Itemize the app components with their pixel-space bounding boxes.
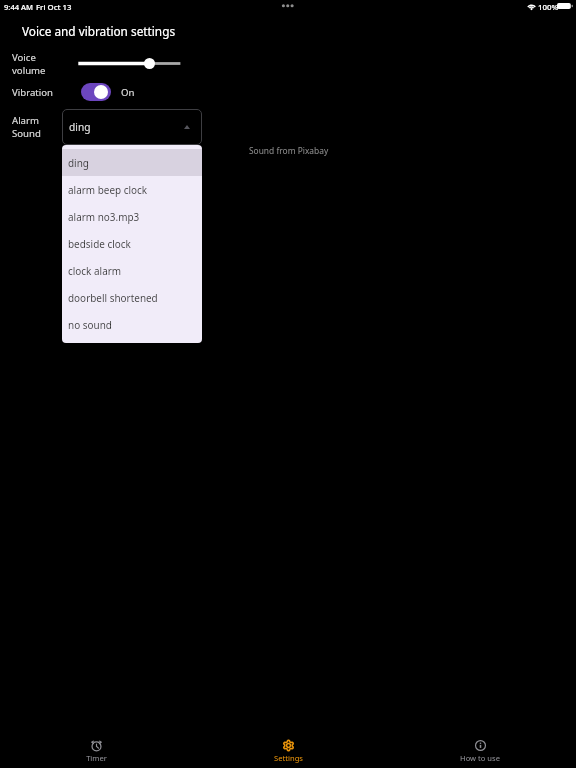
button[interactable]: alarm no3.mp3 [62, 203, 202, 230]
button[interactable]: Timer [0, 722, 192, 768]
button[interactable]: Voice volume slider [72, 54, 188, 74]
staticText: ding [69, 120, 91, 134]
staticText: 9:44 AM [4, 2, 34, 12]
staticText: alarm beep clock [68, 183, 148, 197]
staticText: On [121, 86, 135, 99]
staticText: alarm no3.mp3 [68, 210, 140, 224]
other: Collapse sound list [184, 125, 190, 129]
staticText: How to use [460, 753, 500, 763]
staticText: Vibration [12, 86, 53, 99]
button[interactable]: doorbell shortened [62, 284, 202, 311]
button[interactable]: Vibration on [81, 83, 111, 101]
staticText: Settings [274, 753, 303, 763]
button[interactable]: no sound [62, 311, 202, 338]
staticText: Alarm Sound [12, 114, 41, 140]
staticText: Sound from Pixabay [249, 145, 329, 156]
staticText: Voice and vibration settings [22, 23, 176, 39]
button[interactable]: bedside clock [62, 230, 202, 257]
staticText: ding [68, 156, 89, 170]
staticText: no sound [68, 318, 112, 332]
button[interactable]: How to use [384, 722, 576, 768]
staticText: doorbell shortened [68, 291, 158, 305]
button[interactable]: clock alarm [62, 257, 202, 284]
button[interactable]: ding [62, 109, 202, 145]
staticText: Fri Oct 13 [36, 2, 72, 13]
button[interactable]: alarm beep clock [62, 176, 202, 203]
button[interactable]: ding [62, 149, 202, 176]
staticText: Timer [86, 753, 107, 763]
button[interactable]: Settings [192, 722, 384, 768]
staticText: bedside clock [68, 237, 131, 251]
staticText: Voice volume [12, 51, 46, 77]
staticText: clock alarm [68, 264, 122, 278]
staticText: 100% [538, 2, 559, 13]
